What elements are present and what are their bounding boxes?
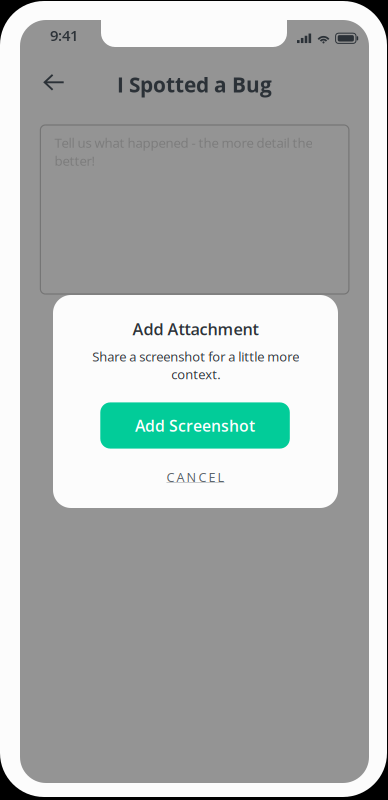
staticText: 9:41: [50, 25, 78, 45]
button[interactable]: C A N C E L: [53, 465, 338, 489]
staticText: I Spotted a Bug: [117, 70, 272, 99]
staticText: Share a screenshot for a little more con…: [92, 347, 299, 383]
button[interactable]: Back: [32, 62, 76, 102]
staticText: Tell us what happened - the more detail …: [54, 133, 312, 169]
staticText: Add Screenshot: [135, 415, 255, 436]
staticText: C A N C E L: [166, 468, 224, 486]
button[interactable]: Add Screenshot: [100, 402, 290, 449]
staticText: Add Attachment: [132, 318, 258, 340]
